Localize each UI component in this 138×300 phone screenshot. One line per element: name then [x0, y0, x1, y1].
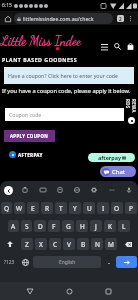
button[interactable]: Menu [99, 41, 110, 52]
staticText: E [31, 204, 35, 213]
button[interactable]: littlemissindee.com.au/check [14, 13, 113, 24]
staticText: If you have a coupon code, please apply … [2, 87, 131, 95]
button[interactable]: Switch language [20, 256, 31, 268]
button[interactable]: More [107, 185, 117, 195]
staticText: Y [73, 204, 77, 213]
staticText: English [59, 259, 76, 266]
staticText: T [59, 204, 63, 213]
staticText: PLANT BASED GOODNESS [2, 56, 78, 63]
button[interactable]: D [34, 220, 46, 232]
button[interactable]: O [111, 202, 123, 214]
button[interactable]: Tabs [116, 14, 125, 23]
button[interactable]: Stickers [55, 185, 65, 195]
button[interactable]: R [41, 202, 53, 214]
staticText: K [108, 222, 113, 231]
button[interactable]: Go [116, 256, 137, 268]
staticText: L [122, 222, 126, 231]
staticText: O [114, 204, 120, 213]
staticText: U [87, 204, 92, 213]
button[interactable]: F [48, 220, 60, 232]
button[interactable]: G [62, 220, 74, 232]
button[interactable]: Close keyboard [4, 186, 13, 195]
staticText: J [95, 222, 97, 231]
button[interactable]: Translate [72, 185, 82, 195]
button[interactable]: K [104, 220, 116, 232]
staticText: B [81, 240, 86, 249]
staticText: Have a coupon? Click here to enter your … [8, 72, 118, 79]
staticText: D [38, 222, 43, 231]
button[interactable]: Clipboard [20, 185, 30, 195]
button[interactable]: J [90, 220, 102, 232]
button[interactable]: Search [112, 41, 123, 52]
button[interactable]: N [91, 238, 103, 250]
button[interactable]: AFTERPAY [9, 151, 43, 158]
button[interactable]: I [97, 202, 109, 214]
staticText: C [53, 240, 58, 249]
staticText: W [16, 204, 23, 213]
staticText: M [108, 240, 114, 249]
button[interactable]: English [33, 256, 101, 268]
button[interactable]: Recents [99, 282, 117, 300]
staticText: Little Miss Indee [1, 33, 82, 49]
button[interactable]: B [77, 238, 89, 250]
staticText: AFTERPAY [18, 152, 43, 158]
button[interactable]: C [49, 238, 61, 250]
button[interactable]: ?123 [1, 256, 18, 268]
button[interactable]: W [14, 202, 25, 214]
button[interactable]: GIF [38, 185, 48, 195]
button[interactable]: P [125, 202, 137, 214]
staticText: G [66, 222, 71, 231]
staticText: Q [4, 204, 10, 213]
staticText: afterpay [98, 154, 121, 161]
button[interactable]: Z [21, 238, 33, 250]
button[interactable]: U [83, 202, 95, 214]
button[interactable]: L [118, 220, 130, 232]
button[interactable]: Home [60, 282, 78, 300]
button[interactable]: A [8, 220, 19, 232]
button[interactable]: E [27, 202, 39, 214]
button[interactable]: afterpay [88, 153, 135, 162]
staticText: 2 [119, 16, 122, 22]
button[interactable]: Shift [1, 238, 19, 250]
staticText: Coupon code [9, 111, 42, 118]
staticText: APPLY COUPON [10, 133, 49, 139]
staticText: Chat [112, 168, 126, 176]
button[interactable]: V [63, 238, 75, 250]
button[interactable]: Y [69, 202, 81, 214]
button[interactable]: Have a coupon? Click here to enter your … [4, 67, 134, 84]
staticText: Z [25, 240, 29, 249]
button[interactable]: S [21, 220, 32, 232]
button[interactable]: X [35, 238, 47, 250]
button[interactable]: Cart [125, 41, 136, 52]
staticText: A [11, 222, 16, 231]
staticText: R [45, 204, 50, 213]
button[interactable]: M [105, 238, 117, 250]
staticText: ?123 [4, 259, 15, 266]
button[interactable]: Back [21, 282, 39, 300]
staticText: V [67, 240, 71, 249]
staticText: I [102, 204, 105, 213]
button[interactable]: Backspace [119, 238, 137, 250]
staticText: littlemissindee.com.au/check [23, 15, 94, 22]
button[interactable]: More options [126, 14, 135, 23]
button[interactable]: Period [103, 256, 114, 268]
button[interactable]: Settings [89, 185, 99, 195]
button[interactable]: APPLY COUPON [4, 130, 55, 142]
staticText: 6:15 [2, 2, 12, 9]
staticText: . [108, 257, 110, 267]
button[interactable]: Home [3, 14, 12, 23]
staticText: F [52, 222, 56, 231]
button[interactable]: T [55, 202, 67, 214]
button[interactable]: Chat [100, 166, 136, 177]
button[interactable]: H [76, 220, 88, 232]
staticText: P [129, 204, 133, 213]
staticText: S [25, 222, 29, 231]
staticText: X [39, 240, 43, 249]
staticText: REWARDS [125, 99, 137, 113]
button[interactable]: Q [1, 202, 12, 214]
staticText: N [95, 240, 100, 249]
button[interactable]: Coupon code [5, 108, 124, 121]
button[interactable]: Voice input [124, 185, 134, 195]
staticText: H [80, 222, 85, 231]
button[interactable]: REWARDS [124, 94, 138, 127]
